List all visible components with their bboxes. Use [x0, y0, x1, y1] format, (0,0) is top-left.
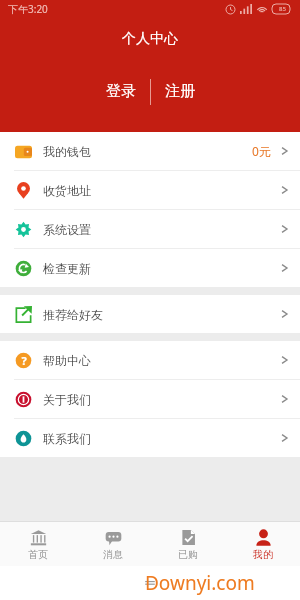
staticText: ? — [21, 353, 27, 368]
staticText: 0元 — [252, 143, 271, 159]
staticText: 收货地址 — [43, 183, 91, 198]
staticText: 首页 — [28, 548, 48, 561]
button[interactable]: 我的 — [225, 522, 300, 566]
staticText: 检查更新 — [43, 261, 91, 276]
staticText: 联系我们 — [43, 431, 91, 446]
button[interactable]: 消息 — [75, 522, 150, 566]
button[interactable]: 系统设置 — [0, 210, 300, 248]
staticText: 关于我们 — [43, 392, 91, 407]
button[interactable]: 已购 — [150, 522, 225, 566]
staticText: 帮助中心 — [43, 353, 91, 368]
button[interactable]: 我的钱包 — [0, 132, 300, 170]
button[interactable]: ? — [0, 341, 300, 379]
staticText: 系统设置 — [43, 222, 91, 237]
staticText: 个人中心 — [122, 30, 178, 48]
button[interactable]: 首页 — [0, 522, 75, 566]
staticText: Downyi.com — [145, 570, 255, 596]
button[interactable]: 关于我们 — [0, 380, 300, 418]
staticText: 我的 — [253, 548, 273, 561]
staticText: 下午3:20 — [8, 2, 48, 16]
staticText: 推荐给好友 — [43, 307, 103, 322]
button[interactable]: 登录 — [92, 78, 150, 105]
staticText: 我的钱包 — [43, 144, 91, 159]
staticText: 已购 — [178, 548, 198, 561]
button[interactable]: 推荐给好友 — [0, 295, 300, 333]
button[interactable]: 检查更新 — [0, 249, 300, 287]
staticText: 消息 — [103, 548, 123, 561]
button[interactable]: 联系我们 — [0, 419, 300, 457]
button[interactable]: 注册 — [151, 78, 209, 105]
staticText: 登录 — [106, 82, 136, 101]
staticText: 注册 — [165, 82, 195, 101]
staticText: 85 — [279, 5, 286, 13]
button[interactable]: 收货地址 — [0, 171, 300, 209]
